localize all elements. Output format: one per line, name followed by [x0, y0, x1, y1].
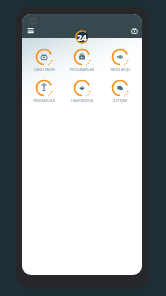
button[interactable]: FREKANSLAR	[25, 77, 63, 103]
staticText: HAKKIMIZDA	[63, 98, 101, 103]
button[interactable]: PROGRAMLAR	[63, 46, 101, 72]
button[interactable]: YAYIN AKIŞI	[101, 46, 139, 72]
staticText: PROGRAMLAR	[63, 67, 101, 72]
button[interactable]: HAKKIMIZDA	[63, 77, 101, 103]
staticText: YAYIN AKIŞI	[101, 67, 139, 72]
button[interactable]: Kanal 24 logo	[71, 26, 93, 48]
staticText: FREKANSLAR	[25, 98, 63, 103]
staticText: 24	[77, 31, 87, 43]
button[interactable]: Menu	[23, 24, 38, 39]
button[interactable]: CANLI YAYIN	[25, 46, 63, 72]
staticText: İLETİŞİM	[101, 98, 139, 103]
button[interactable]: İLETİŞİM	[101, 77, 139, 103]
button[interactable]: Canli yayin	[127, 24, 142, 39]
staticText: CANLI YAYIN	[25, 67, 63, 72]
